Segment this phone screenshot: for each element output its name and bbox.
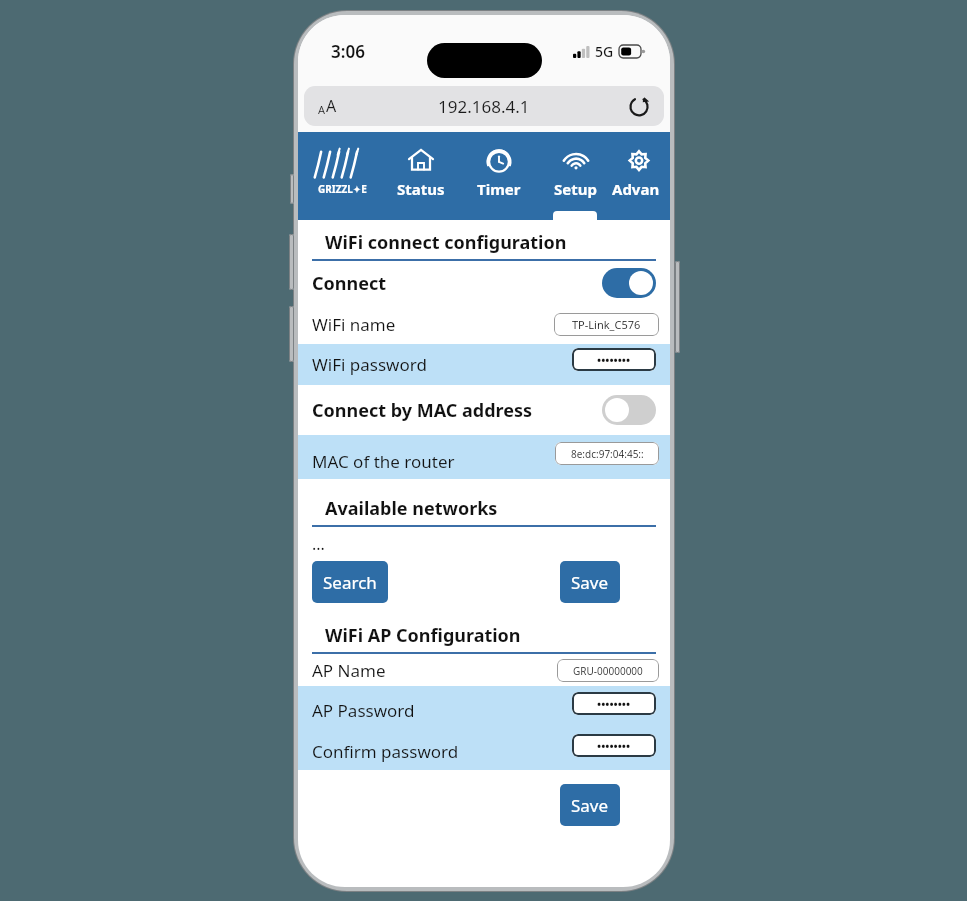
button[interactable]: Advanced (612, 132, 666, 220)
staticText: Available networks (325, 496, 498, 521)
button[interactable]: Confirm password (298, 725, 670, 770)
staticText: •••••••• (597, 696, 631, 711)
staticText: •••••••• (597, 352, 631, 367)
button[interactable]: MAC of the router (298, 435, 670, 479)
button[interactable]: AP Name (298, 654, 670, 686)
button[interactable]: Connect (298, 261, 670, 305)
button[interactable]: Search (312, 561, 388, 603)
button[interactable]: Reload (626, 93, 652, 119)
staticText: 192.168.4.1 (438, 95, 530, 118)
staticText: WiFi AP Configuration (325, 623, 521, 648)
button[interactable]: Save (560, 784, 620, 826)
staticText: Advanced (612, 179, 666, 199)
staticText: Setup (554, 179, 597, 199)
staticText: Save (571, 571, 609, 594)
button[interactable]: GRU-00000000 (557, 659, 659, 682)
staticText: WiFi name (312, 313, 396, 336)
staticText: Save (571, 794, 609, 817)
staticText: Search (323, 571, 377, 594)
button[interactable]: Timer (460, 132, 538, 220)
staticText: WiFi password (312, 353, 427, 376)
staticText: Timer (477, 179, 521, 199)
staticText: 3:06 (331, 40, 365, 63)
staticText: A (326, 95, 337, 117)
staticText: GRU-00000000 (573, 664, 643, 678)
button[interactable]: •••••••• (572, 348, 656, 371)
staticText: TP-Link_C576 (572, 317, 641, 332)
button[interactable]: A (304, 86, 664, 126)
button[interactable]: Save (560, 561, 620, 603)
button[interactable]: •••••••• (572, 734, 656, 757)
staticText: Status (397, 179, 445, 199)
staticText: ... (312, 533, 325, 555)
button[interactable]: WiFi password (298, 344, 670, 385)
staticText: Connect by MAC address (312, 398, 533, 423)
staticText: MAC of the router (312, 450, 455, 473)
button[interactable]: AP Password (298, 686, 670, 725)
staticText: Connect (312, 271, 387, 296)
button[interactable]: Status (382, 132, 460, 220)
staticText: 5G (595, 42, 614, 61)
staticText: •••••••• (597, 738, 631, 753)
staticText: AP Name (312, 659, 386, 682)
staticText: WiFi connect configuration (325, 230, 567, 255)
button[interactable]: •••••••• (572, 692, 656, 715)
button[interactable]: Grizzl-E home (302, 132, 382, 220)
button[interactable]: TP-Link_C576 (554, 313, 659, 336)
button[interactable]: Setup (538, 132, 612, 220)
button[interactable]: Toggle off (602, 395, 656, 425)
staticText: GRIZZL✦E (318, 182, 367, 196)
staticText: 8e:dc:97:04:45:: (571, 447, 644, 461)
button[interactable]: Connect by MAC address (298, 385, 670, 435)
staticText: Confirm password (312, 740, 459, 763)
button[interactable]: 8e:dc:97:04:45:: (555, 442, 659, 465)
button[interactable]: Toggle on (602, 268, 656, 298)
staticText: AP Password (312, 699, 415, 722)
staticText: A (318, 102, 326, 117)
button[interactable]: WiFi name (298, 305, 670, 344)
